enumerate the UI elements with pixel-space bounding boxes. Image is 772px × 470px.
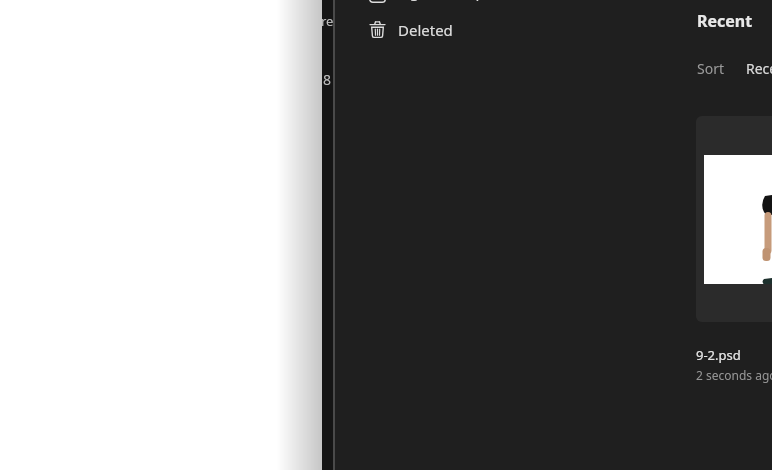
staticText: Lightroom photos	[398, 0, 525, 1]
staticText: Recent	[697, 10, 753, 32]
button[interactable]: Lightroom photos	[352, 0, 682, 19]
button[interactable]: Sort	[690, 55, 730, 79]
staticText: re	[321, 12, 334, 30]
button[interactable]	[696, 116, 772, 322]
staticText: Recent	[746, 59, 772, 78]
staticText: 2 seconds ago	[696, 367, 772, 383]
button[interactable]: Recent	[739, 55, 772, 79]
staticText: 8	[323, 70, 332, 89]
button[interactable]: Deleted	[352, 7, 682, 52]
staticText: Deleted	[398, 20, 453, 40]
staticText: 9-2.psd	[696, 346, 741, 364]
staticText: Sort	[697, 59, 724, 78]
